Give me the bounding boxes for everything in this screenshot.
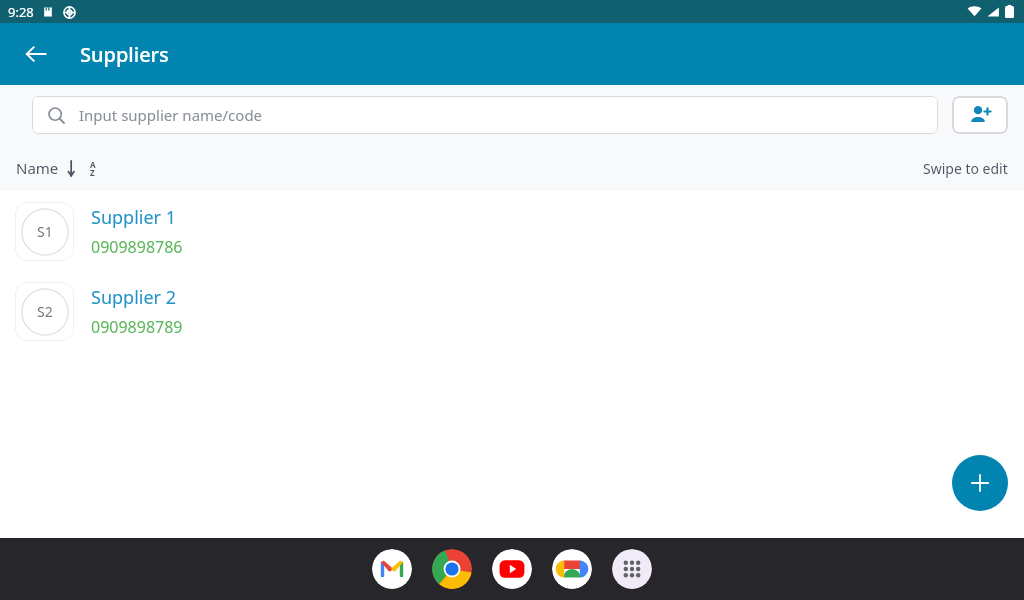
button[interactable]: S2 — [0, 271, 1024, 351]
staticText: 0909898786 — [91, 236, 183, 258]
staticText: 9:28 — [8, 3, 34, 21]
button[interactable]: All apps — [612, 549, 652, 589]
staticText: Suppliers — [80, 41, 169, 68]
staticText: Input supplier name/code — [79, 105, 263, 125]
staticText: 0909898789 — [91, 316, 183, 338]
staticText: Supplier 1 — [91, 205, 176, 230]
button[interactable]: Input supplier name/code — [32, 96, 938, 134]
button[interactable]: Add supplier — [952, 96, 1008, 134]
staticText: Supplier 2 — [91, 285, 176, 310]
button[interactable]: YouTube — [492, 549, 532, 589]
staticText: Z — [90, 167, 95, 178]
button[interactable]: S1 — [0, 191, 1024, 271]
button[interactable]: Back — [14, 32, 58, 76]
button[interactable]: Name — [16, 158, 99, 178]
staticText: A — [90, 159, 96, 170]
staticText: S2 — [37, 302, 53, 321]
staticText: Name — [16, 158, 59, 178]
button[interactable]: Gmail — [372, 549, 412, 589]
staticText: S1 — [37, 222, 53, 241]
button[interactable]: Add — [952, 455, 1008, 511]
button[interactable]: Photos — [552, 549, 592, 589]
button[interactable]: Chrome — [432, 549, 472, 589]
staticText: Swipe to edit — [923, 159, 1008, 178]
